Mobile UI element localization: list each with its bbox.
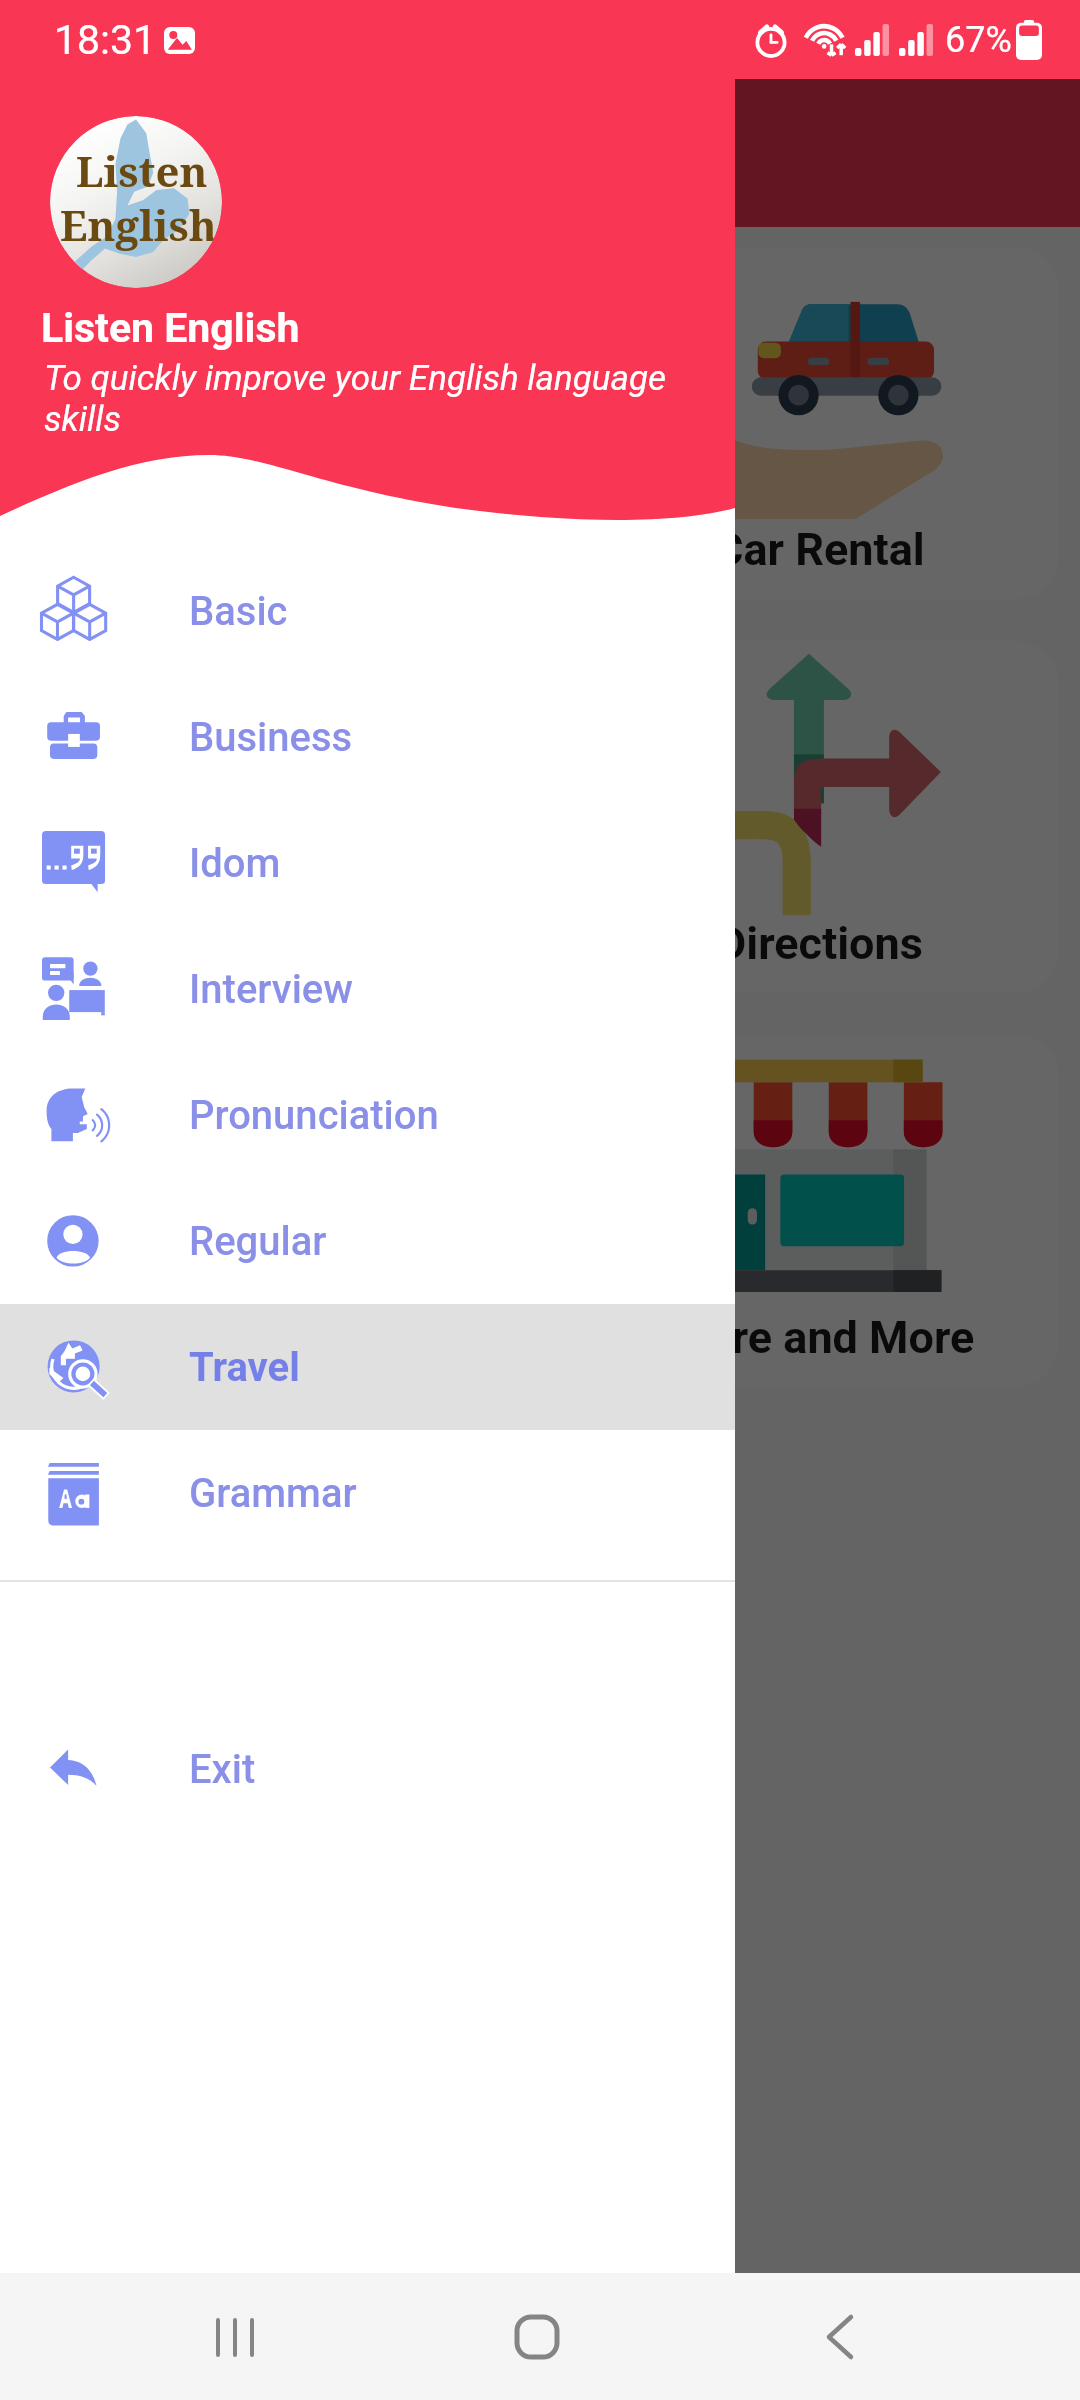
staticText: Car Rental <box>714 523 925 576</box>
staticText: Store and More <box>664 1311 975 1364</box>
staticText: To quickly improve your English language… <box>44 358 704 440</box>
staticText: Grammar <box>189 1470 357 1517</box>
staticText: Pronunciation <box>189 1092 439 1139</box>
button[interactable]: Store and More <box>572 1035 1059 1387</box>
staticText: Basic <box>189 588 288 635</box>
staticText: English <box>60 196 217 253</box>
staticText: Exit <box>189 1746 256 1793</box>
staticText: Idom <box>189 840 281 887</box>
button[interactable]: Basic <box>0 548 735 674</box>
button[interactable]: Grammar <box>0 1430 735 1556</box>
staticText: 18:31 <box>54 16 157 64</box>
button[interactable]: Directions <box>572 641 1059 993</box>
button[interactable]: Business <box>0 674 735 800</box>
staticText: 67% <box>945 19 1012 61</box>
button[interactable]: Car Rental <box>572 247 1059 599</box>
button[interactable]: Exit <box>0 1706 735 1832</box>
button[interactable]: Pronunciation <box>0 1052 735 1178</box>
staticText: Listen <box>76 142 208 199</box>
staticText: Interview <box>189 966 353 1013</box>
button[interactable]: Home <box>482 2282 592 2392</box>
staticText: Travel <box>189 1344 300 1391</box>
button[interactable]: Interview <box>0 926 735 1052</box>
staticText: Regular <box>189 1218 327 1265</box>
staticText: Business <box>189 714 353 761</box>
button[interactable]: Recent apps <box>180 2282 290 2392</box>
button[interactable]: Idom <box>0 800 735 926</box>
staticText: Listen English <box>41 304 300 352</box>
button[interactable]: Regular <box>0 1178 735 1304</box>
button[interactable]: Back <box>785 2282 895 2392</box>
button[interactable]: Travel <box>0 1304 735 1430</box>
staticText: Directions <box>717 917 923 970</box>
